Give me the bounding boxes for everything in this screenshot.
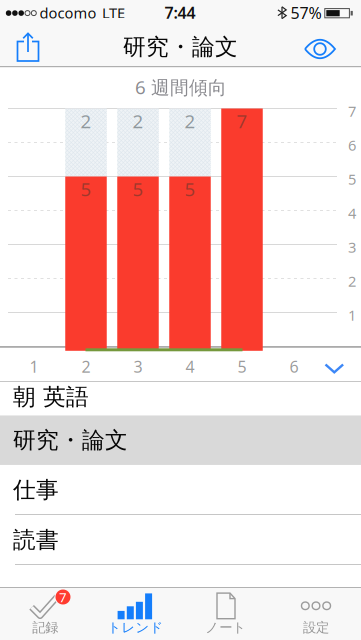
button[interactable]: 読書 xyxy=(0,515,361,564)
staticText: LTE xyxy=(102,3,125,22)
staticText: 研究・論文 xyxy=(13,426,128,454)
staticText: 7:44 xyxy=(164,2,195,23)
button[interactable]: 研究・論文 xyxy=(0,415,361,465)
staticText: 2 xyxy=(80,109,91,133)
staticText: 6 xyxy=(348,135,356,155)
button[interactable]: ノート xyxy=(181,588,271,640)
staticText: 5 xyxy=(184,177,195,201)
staticText: 記録 xyxy=(32,619,58,636)
staticText: 4 xyxy=(348,203,356,223)
staticText: 4 xyxy=(185,356,194,377)
button[interactable]: 仕事 xyxy=(0,465,361,514)
staticText: 仕事 xyxy=(13,476,59,504)
staticText: 5 xyxy=(348,169,356,189)
staticText: 7 xyxy=(348,101,356,121)
staticText: 2 xyxy=(348,271,356,291)
staticText: 3 xyxy=(348,237,356,257)
staticText: 研究・論文 xyxy=(123,33,238,61)
button[interactable]: Share xyxy=(6,27,50,67)
button[interactable]: 展開 xyxy=(321,360,347,378)
staticText: 5 xyxy=(132,177,143,201)
staticText: 3 xyxy=(133,356,142,377)
staticText: 1 xyxy=(29,356,38,377)
button[interactable]: 7 xyxy=(0,588,90,640)
staticText: 1 xyxy=(348,305,356,325)
staticText: 設定 xyxy=(303,619,329,636)
staticText: 5 xyxy=(80,177,91,201)
staticText: 2 xyxy=(184,109,195,133)
staticText: 7 xyxy=(59,588,67,606)
staticText: 6 xyxy=(289,356,298,377)
button[interactable]: 設定 xyxy=(271,588,361,640)
staticText: 7 xyxy=(236,109,247,133)
button[interactable]: 表示オプション xyxy=(298,29,342,69)
button[interactable]: 朝 英語 xyxy=(0,380,361,413)
staticText: 57% xyxy=(290,2,321,23)
staticText: 5 xyxy=(237,356,246,377)
staticText: docomo xyxy=(39,3,96,22)
staticText: 6 週間傾向 xyxy=(135,75,227,99)
staticText: 2 xyxy=(81,356,90,377)
staticText: ノート xyxy=(205,619,246,636)
staticText: トレンド xyxy=(107,619,163,636)
staticText: 読書 xyxy=(13,526,59,554)
button[interactable]: トレンド xyxy=(90,588,180,640)
staticText: 2 xyxy=(132,109,143,133)
staticText: 朝 英語 xyxy=(13,383,89,411)
